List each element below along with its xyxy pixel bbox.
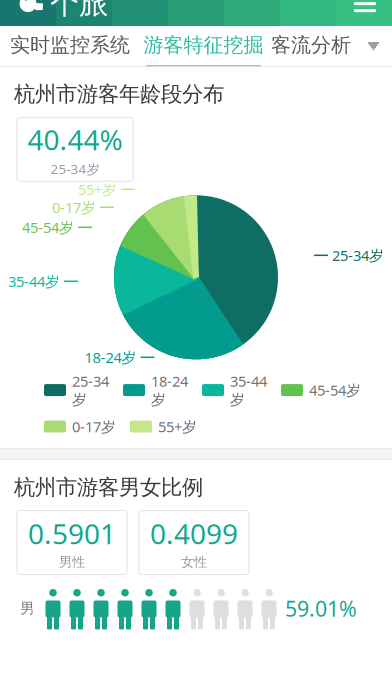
staticText: 18-24岁: [151, 371, 188, 409]
staticText: 客流分析: [271, 33, 351, 57]
staticText: 25-34岁: [50, 160, 99, 178]
button[interactable]: 实时监控系统: [0, 26, 140, 66]
staticText: 55+岁: [78, 180, 117, 199]
staticText: 45-54岁: [22, 218, 74, 237]
staticText: 0.4099: [150, 515, 238, 552]
staticText: 25-34岁: [332, 246, 384, 265]
button[interactable]: More tabs: [355, 26, 392, 66]
staticText: 25-34岁: [72, 371, 109, 409]
staticText: 59.01%: [285, 594, 357, 623]
staticText: 实时监控系统: [10, 33, 130, 57]
staticText: 0-17岁: [52, 198, 96, 217]
staticText: 男性: [59, 554, 85, 570]
staticText: 男: [20, 599, 35, 617]
staticText: 杭州市游客男女比例: [14, 474, 203, 500]
staticText: 45-54岁: [309, 380, 361, 400]
staticText: 35-44岁: [230, 371, 267, 409]
staticText: 女性: [181, 554, 207, 570]
button[interactable]: Menu: [338, 0, 392, 24]
staticText: 0.5901: [28, 515, 116, 552]
staticText: 18-24岁: [84, 348, 136, 367]
staticText: 40.44%: [27, 121, 122, 158]
button[interactable]: 游客特征挖掘: [140, 26, 267, 66]
staticText: 0-17岁: [72, 417, 116, 436]
staticText: 55+岁: [158, 417, 197, 436]
staticText: 杭州市游客年龄段分布: [14, 81, 224, 107]
button[interactable]: 客流分析: [267, 26, 355, 66]
staticText: 个旅: [50, 0, 108, 22]
staticText: 35-44岁: [8, 272, 60, 291]
staticText: 游客特征挖掘: [143, 33, 263, 57]
